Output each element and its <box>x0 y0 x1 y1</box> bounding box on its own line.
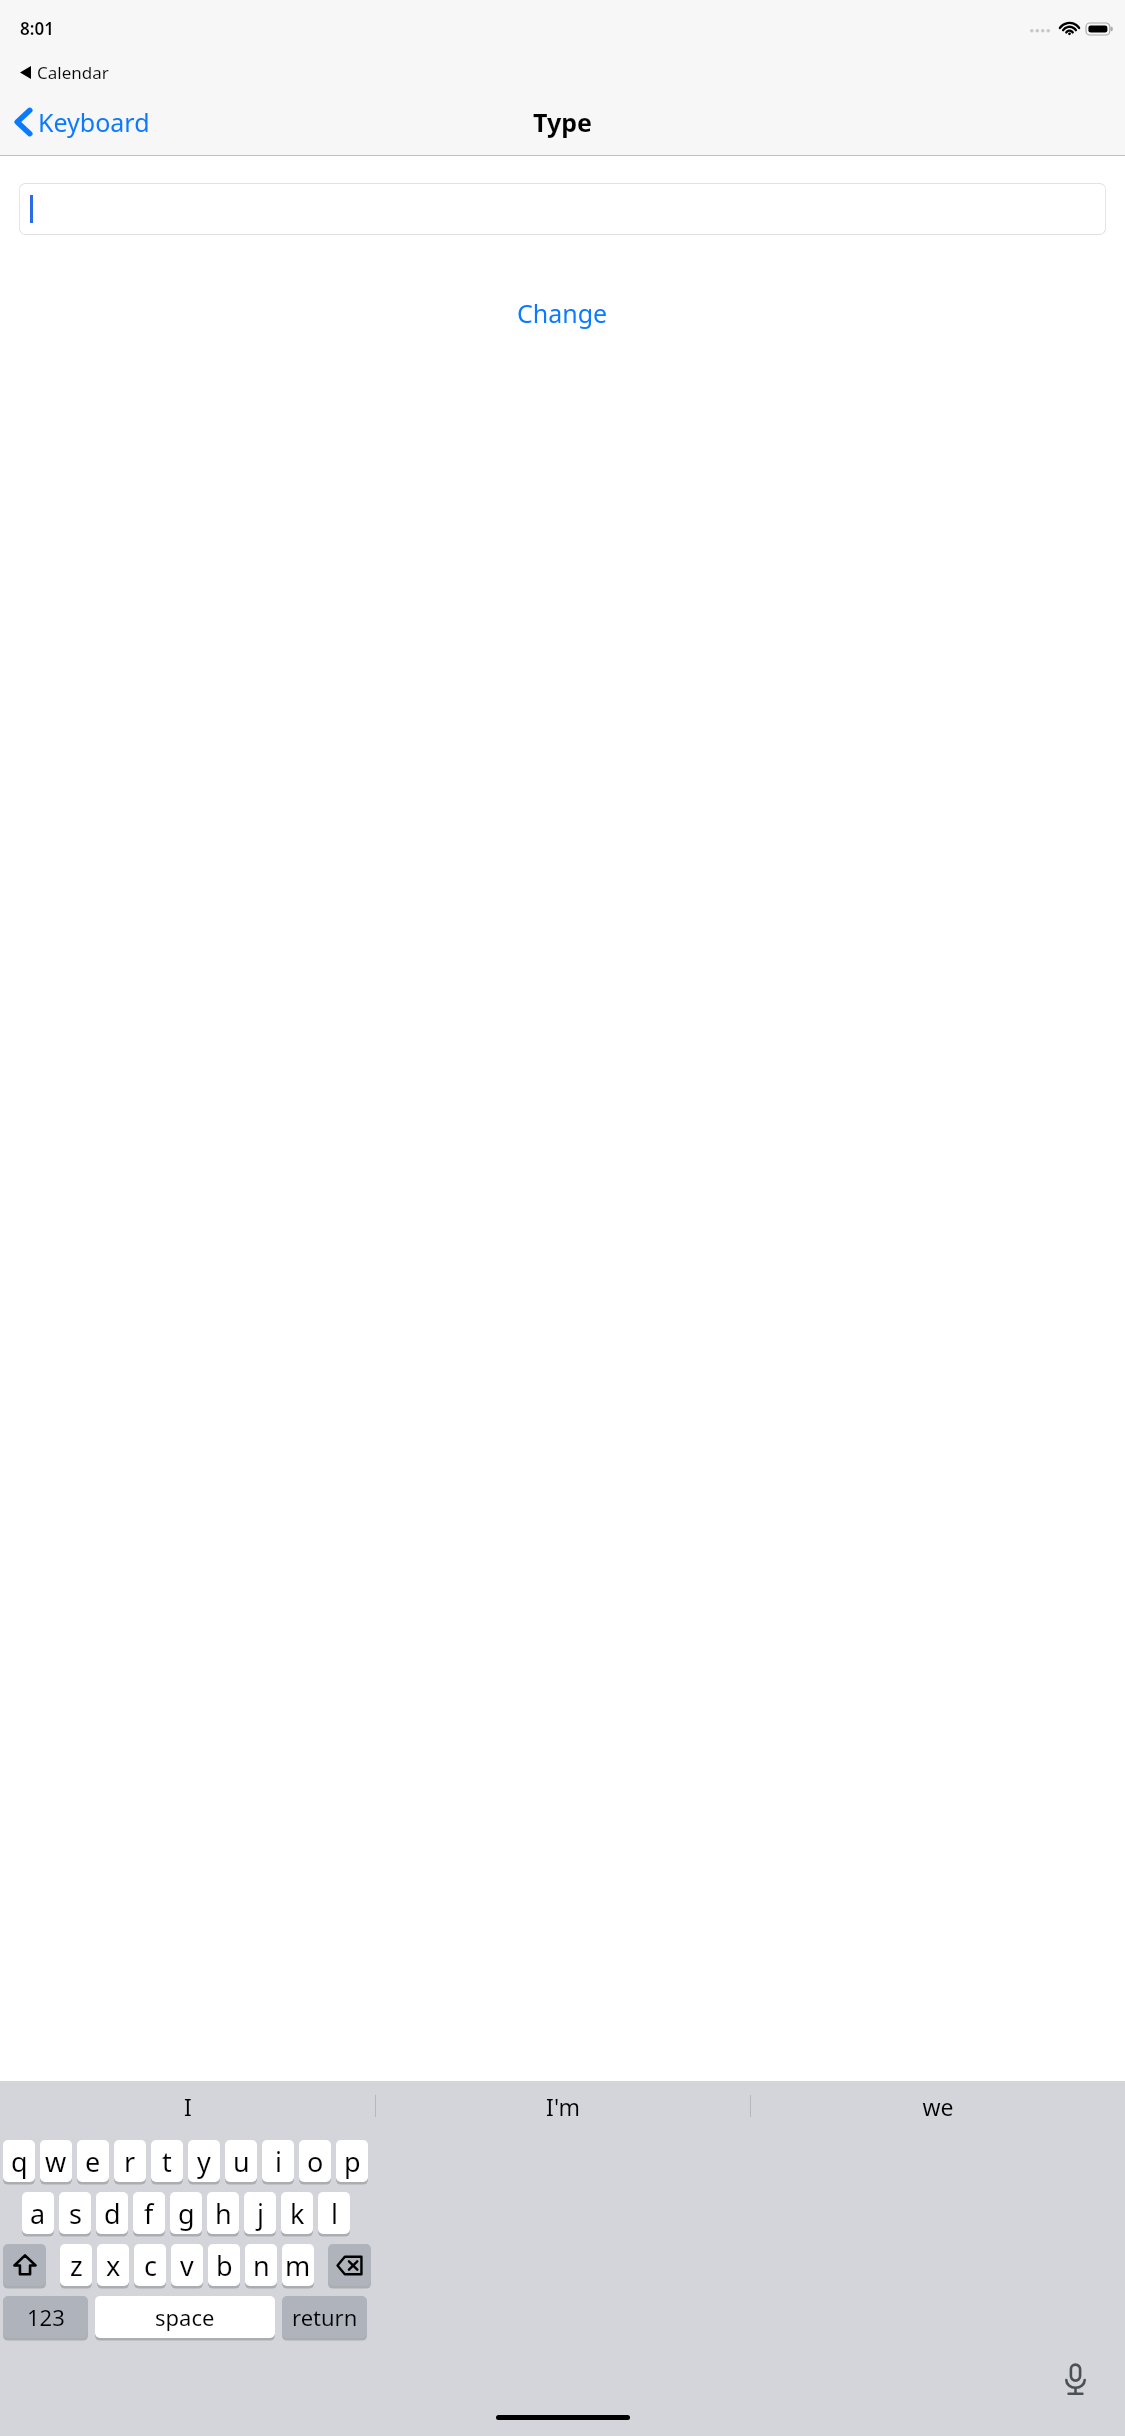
staticText: p <box>344 2143 361 2180</box>
staticText: m <box>285 2247 311 2284</box>
staticText: j <box>257 2195 264 2232</box>
button[interactable]: Change <box>503 290 622 336</box>
staticText: t <box>162 2143 172 2180</box>
button[interactable]: o <box>299 2140 331 2182</box>
staticText: I'm <box>546 2091 580 2122</box>
staticText: k <box>290 2195 305 2232</box>
staticText: u <box>233 2143 250 2180</box>
staticText: o <box>307 2143 324 2180</box>
button[interactable]: b <box>208 2244 240 2286</box>
button[interactable]: i <box>262 2140 294 2182</box>
button[interactable]: space <box>95 2296 275 2338</box>
button[interactable]: y <box>188 2140 220 2182</box>
staticText: g <box>178 2195 195 2232</box>
button[interactable]: j <box>244 2192 276 2234</box>
staticText: a <box>30 2195 46 2232</box>
staticText: Change <box>517 296 608 330</box>
staticText: q <box>11 2143 28 2180</box>
staticText: l <box>331 2195 338 2232</box>
staticText: s <box>69 2195 82 2232</box>
button[interactable]: e <box>77 2140 109 2182</box>
button[interactable]: w <box>40 2140 72 2182</box>
staticText: e <box>85 2143 101 2180</box>
staticText: 8:01 <box>20 17 54 40</box>
button[interactable]: Shift <box>3 2244 46 2286</box>
button[interactable]: h <box>207 2192 239 2234</box>
button[interactable]: g <box>170 2192 202 2234</box>
staticText: return <box>292 2302 358 2332</box>
button[interactable]: Dictate <box>1053 2358 1097 2402</box>
button[interactable]: t <box>151 2140 183 2182</box>
staticText: b <box>216 2247 233 2284</box>
staticText: h <box>215 2195 232 2232</box>
button[interactable]: p <box>336 2140 368 2182</box>
button[interactable]: d <box>96 2192 128 2234</box>
button[interactable]: Keyboard <box>0 88 160 155</box>
staticText: d <box>104 2195 121 2232</box>
button[interactable]: n <box>245 2244 277 2286</box>
button[interactable]: c <box>134 2244 166 2286</box>
button[interactable]: I <box>0 2081 375 2131</box>
button[interactable]: l <box>318 2192 350 2234</box>
staticText: Type <box>533 105 592 139</box>
staticText: f <box>144 2195 154 2232</box>
staticText: space <box>155 2302 215 2332</box>
staticText: n <box>253 2247 270 2284</box>
staticText: w <box>45 2143 67 2180</box>
button[interactable]: return <box>282 2296 367 2338</box>
button[interactable]: a <box>22 2192 54 2234</box>
button[interactable] <box>19 183 1106 235</box>
staticText: c <box>144 2247 157 2284</box>
button[interactable]: v <box>171 2244 203 2286</box>
staticText: x <box>106 2247 121 2284</box>
staticText: i <box>275 2143 282 2180</box>
button[interactable]: s <box>59 2192 91 2234</box>
staticText: I <box>184 2091 192 2122</box>
button[interactable]: 123 <box>3 2296 88 2338</box>
staticText: z <box>70 2247 83 2284</box>
staticText: 123 <box>27 2302 65 2332</box>
button[interactable]: m <box>282 2244 314 2286</box>
staticText: we <box>922 2091 954 2122</box>
button[interactable]: z <box>60 2244 92 2286</box>
button[interactable]: I'm <box>376 2081 750 2131</box>
staticText: r <box>124 2143 136 2180</box>
button[interactable]: Backspace <box>328 2244 371 2286</box>
button[interactable]: r <box>114 2140 146 2182</box>
button[interactable]: q <box>3 2140 35 2182</box>
button[interactable]: u <box>225 2140 257 2182</box>
button[interactable]: we <box>751 2081 1125 2131</box>
button[interactable]: k <box>281 2192 313 2234</box>
button[interactable]: Calendar <box>0 57 1125 88</box>
staticText: v <box>180 2247 194 2284</box>
staticText: y <box>197 2143 211 2180</box>
button[interactable]: f <box>133 2192 165 2234</box>
staticText: Calendar <box>37 61 109 84</box>
button[interactable]: x <box>97 2244 129 2286</box>
staticText: Keyboard <box>38 105 150 139</box>
